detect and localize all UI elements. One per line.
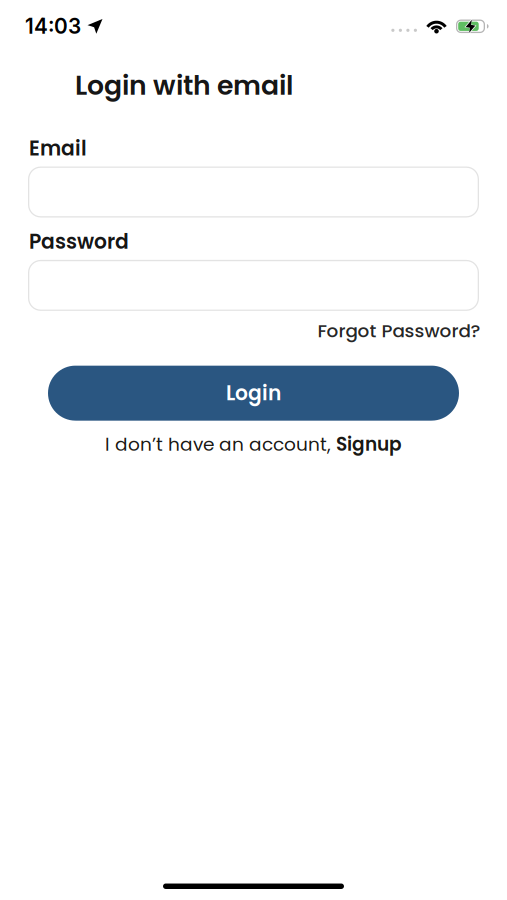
button[interactable]: I don’t have an account, Signup bbox=[105, 432, 402, 457]
button[interactable]: Forgot Password? bbox=[317, 318, 480, 344]
staticText: Forgot Password? bbox=[317, 318, 480, 344]
staticText: 14:03 bbox=[25, 14, 81, 39]
staticText: Password bbox=[29, 227, 129, 256]
button[interactable] bbox=[28, 166, 479, 217]
staticText: Email bbox=[29, 134, 87, 162]
button[interactable]: Login bbox=[48, 366, 459, 421]
staticText: Login with email bbox=[75, 67, 293, 104]
button[interactable] bbox=[28, 260, 479, 311]
staticText: I don’t have an account, Signup bbox=[105, 432, 402, 457]
staticText: Login bbox=[226, 379, 281, 407]
